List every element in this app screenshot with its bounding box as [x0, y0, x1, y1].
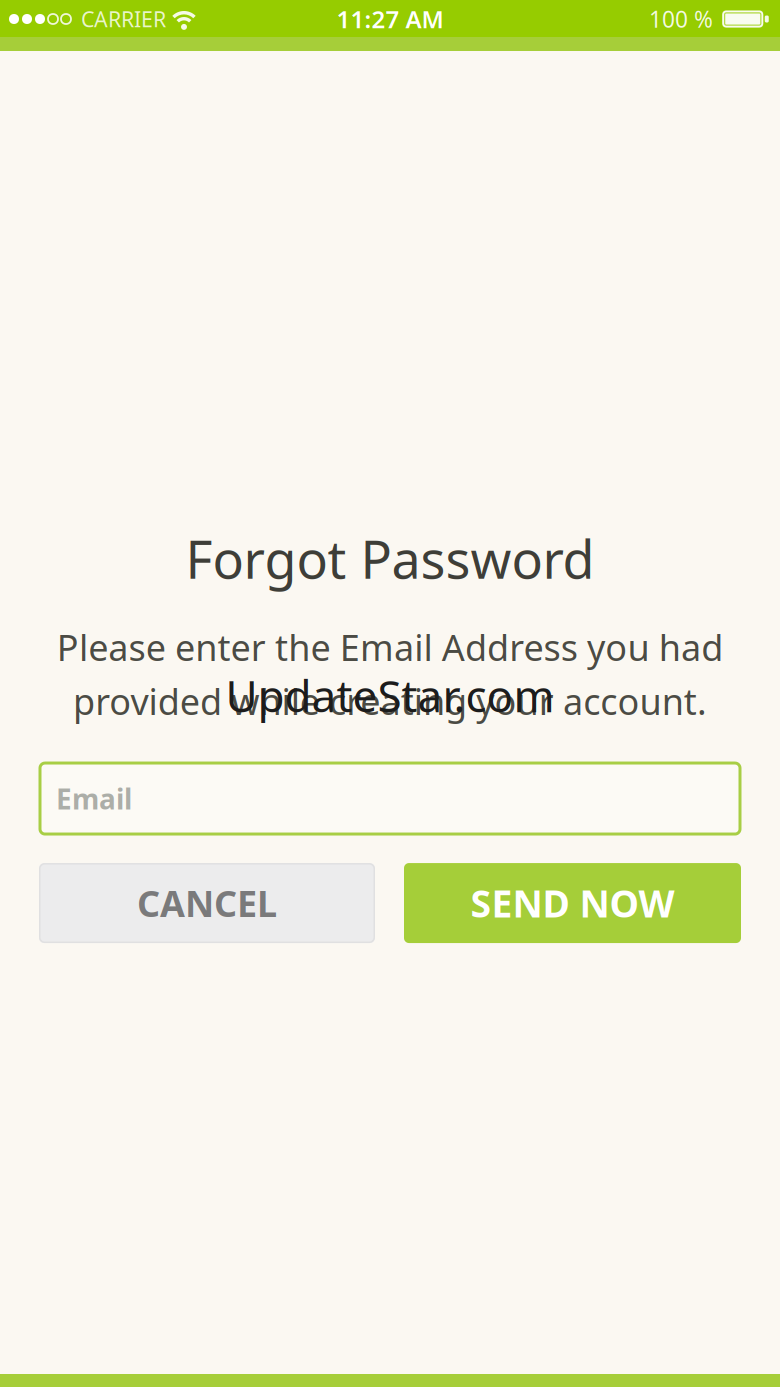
staticText: provided while creating your account. — [73, 677, 707, 725]
staticText: Email — [56, 780, 132, 817]
staticText: 100 % — [649, 4, 713, 34]
staticText: UpdateStar.com — [225, 666, 554, 724]
staticText: SEND NOW — [470, 878, 674, 928]
button[interactable]: CANCEL — [39, 863, 375, 943]
staticText: CARRIER — [81, 5, 166, 33]
staticText: Please enter the Email Address you had — [57, 623, 723, 671]
staticText: 11:27 AM — [336, 3, 443, 35]
staticText: Forgot Password — [185, 524, 594, 593]
button[interactable]: SEND NOW — [404, 863, 741, 943]
staticText: CANCEL — [137, 879, 277, 927]
button[interactable]: Email — [40, 763, 740, 834]
